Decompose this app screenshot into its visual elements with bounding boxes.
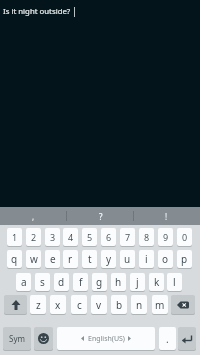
- staticText: ,: [32, 211, 35, 222]
- button[interactable]: y: [101, 250, 116, 268]
- button[interactable]: j: [130, 273, 145, 291]
- staticText: b: [116, 298, 123, 312]
- button[interactable]: 9: [158, 228, 173, 246]
- button[interactable]: 7: [120, 228, 135, 246]
- staticText: 8: [144, 231, 150, 243]
- button[interactable]: [4, 295, 27, 314]
- button[interactable]: v: [91, 295, 107, 314]
- button[interactable]: c: [71, 295, 87, 314]
- staticText: f: [79, 275, 83, 289]
- button[interactable]: h: [111, 273, 126, 291]
- button[interactable]: a: [16, 273, 31, 291]
- staticText: 7: [125, 231, 131, 243]
- staticText: h: [115, 275, 122, 289]
- staticText: n: [136, 298, 143, 312]
- staticText: 1: [12, 231, 18, 243]
- staticText: 4: [68, 231, 74, 243]
- staticText: Sym: [9, 333, 25, 344]
- staticText: k: [154, 275, 160, 289]
- staticText: g: [96, 275, 103, 289]
- staticText: d: [58, 275, 65, 289]
- staticText: t: [88, 252, 92, 266]
- button[interactable]: g: [92, 273, 107, 291]
- staticText: a: [21, 275, 27, 289]
- button[interactable]: n: [131, 295, 147, 314]
- staticText: w: [30, 252, 38, 266]
- button[interactable]: [0, 0, 200, 207]
- staticText: Is it night outside?: [3, 6, 71, 17]
- button[interactable]: !: [133, 207, 200, 225]
- button[interactable]: p: [177, 250, 192, 268]
- staticText: English(US): [88, 334, 125, 344]
- button[interactable]: 1: [7, 228, 22, 246]
- button[interactable]: [178, 327, 196, 350]
- staticText: x: [55, 298, 61, 312]
- button[interactable]: [34, 327, 53, 350]
- button[interactable]: [171, 295, 195, 314]
- button[interactable]: 4: [63, 228, 78, 246]
- button[interactable]: m: [152, 295, 168, 314]
- button[interactable]: ,: [0, 207, 67, 225]
- staticText: v: [96, 298, 102, 312]
- button[interactable]: e: [45, 250, 60, 268]
- button[interactable]: 3: [45, 228, 60, 246]
- staticText: e: [50, 252, 56, 266]
- button[interactable]: w: [26, 250, 41, 268]
- button[interactable]: b: [111, 295, 127, 314]
- button[interactable]: 5: [82, 228, 97, 246]
- button[interactable]: s: [35, 273, 50, 291]
- staticText: 6: [106, 231, 112, 243]
- button[interactable]: 6: [101, 228, 116, 246]
- button[interactable]: Sym: [3, 327, 31, 350]
- button[interactable]: f: [73, 273, 88, 291]
- button[interactable]: k: [149, 273, 164, 291]
- staticText: s: [40, 275, 45, 289]
- staticText: j: [136, 275, 139, 289]
- staticText: .: [166, 332, 169, 346]
- button[interactable]: 2: [26, 228, 41, 246]
- button[interactable]: .: [159, 327, 176, 350]
- button[interactable]: z: [30, 295, 46, 314]
- button[interactable]: 8: [139, 228, 154, 246]
- staticText: p: [181, 252, 188, 266]
- button[interactable]: t: [82, 250, 97, 268]
- staticText: ?: [99, 211, 103, 222]
- staticText: z: [36, 298, 41, 312]
- staticText: y: [106, 252, 112, 266]
- staticText: !: [165, 211, 168, 222]
- button[interactable]: l: [167, 273, 182, 291]
- staticText: o: [162, 252, 169, 266]
- button[interactable]: i: [139, 250, 154, 268]
- staticText: 0: [182, 231, 188, 243]
- button[interactable]: ?: [67, 207, 134, 225]
- button[interactable]: English(US): [57, 327, 155, 350]
- button[interactable]: u: [120, 250, 135, 268]
- staticText: 5: [87, 231, 93, 243]
- button[interactable]: x: [50, 295, 66, 314]
- staticText: 2: [31, 231, 37, 243]
- staticText: l: [173, 275, 176, 289]
- staticText: q: [11, 252, 18, 266]
- button[interactable]: o: [158, 250, 173, 268]
- staticText: c: [77, 298, 82, 312]
- staticText: u: [124, 252, 131, 266]
- button[interactable]: q: [7, 250, 22, 268]
- staticText: 3: [50, 231, 56, 243]
- staticText: m: [155, 298, 165, 312]
- button[interactable]: 0: [177, 228, 192, 246]
- staticText: i: [145, 252, 148, 266]
- staticText: r: [68, 252, 73, 266]
- button[interactable]: d: [54, 273, 69, 291]
- staticText: 9: [163, 231, 169, 243]
- button[interactable]: r: [63, 250, 78, 268]
